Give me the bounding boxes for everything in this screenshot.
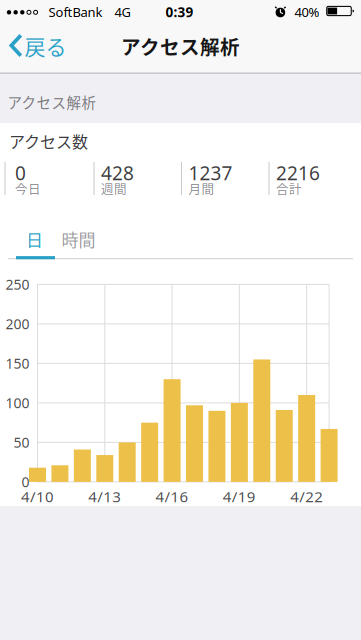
staticText: アクセス数 [9,129,88,153]
staticText: 40% [294,3,319,21]
staticText: 4/16 [156,486,189,507]
staticText: アクセス解析 [7,91,96,112]
staticText: 0:39 [165,3,193,21]
staticText: 時間 [61,227,95,251]
staticText: 2216 [276,160,320,186]
button[interactable]: 日 [15,225,54,253]
staticText: 今日 [15,179,41,198]
staticText: 50 [13,433,29,452]
staticText: 250 [5,275,29,294]
staticText: SoftBank [48,3,102,21]
staticText: 日 [26,227,43,251]
staticText: 4/19 [223,486,256,507]
button[interactable]: 時間 [56,225,100,253]
staticText: 4/22 [290,486,323,507]
staticText: 月間 [188,179,214,198]
staticText: 100 [5,393,29,412]
staticText: 200 [5,314,29,333]
staticText: 週間 [101,179,127,198]
staticText: アクセス解析 [121,32,240,60]
staticText: 合計 [276,179,302,198]
button[interactable]: 戻る [0,22,70,65]
staticText: 150 [5,354,29,373]
staticText: 4/10 [21,486,54,507]
staticText: 1237 [188,160,232,186]
staticText: 戻る [24,30,66,61]
staticText: 4G [114,3,130,21]
staticText: 428 [101,160,134,186]
staticText: 0 [15,160,26,186]
staticText: 4/13 [88,486,121,507]
staticText: 0 [21,472,29,491]
